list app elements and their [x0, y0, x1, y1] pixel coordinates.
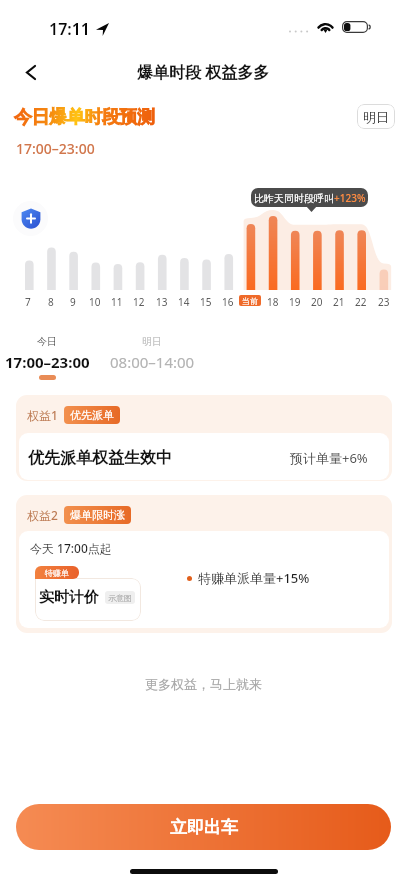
button[interactable]: 明日 — [92, 335, 212, 372]
staticText: 14 — [178, 295, 190, 309]
staticText: 11 — [111, 295, 123, 309]
staticText: 优先派单 — [70, 408, 114, 422]
staticText: 18 — [267, 295, 279, 309]
button[interactable]: 立即出车 — [16, 804, 391, 850]
staticText: 9 — [70, 295, 76, 309]
staticText: 今日 — [37, 335, 57, 348]
staticText: 比昨天同时段呼叫 — [254, 192, 334, 205]
staticText: 爆单限时涨 — [70, 508, 125, 522]
staticText: 权益2 — [27, 507, 58, 523]
staticText: 立即出车 — [170, 817, 238, 838]
staticText: 22 — [355, 295, 367, 309]
staticText: 10 — [89, 295, 101, 309]
staticText: 16 — [222, 295, 234, 309]
staticText: 8 — [48, 295, 54, 309]
staticText: 21 — [333, 295, 345, 309]
staticText: 权益1 — [27, 407, 58, 423]
staticText: 更多权益，马上就来 — [0, 676, 407, 692]
button[interactable]: Back — [13, 48, 49, 96]
staticText: 今天 17:00点起 — [30, 540, 112, 556]
staticText: 明日 — [142, 335, 162, 348]
button[interactable]: 权益1 — [16, 395, 392, 481]
staticText: +123% — [334, 191, 366, 205]
staticText: 明日 — [363, 109, 389, 125]
staticText: 12 — [133, 295, 145, 309]
staticText: 优先派单权益生效中 — [28, 448, 172, 468]
staticText: 实时计价 — [39, 588, 99, 607]
staticText: 15 — [200, 295, 212, 309]
staticText: 17:11 — [49, 18, 91, 40]
button[interactable]: 权益2 — [16, 495, 392, 633]
staticText: 17:00–23:00 — [16, 139, 95, 158]
staticText: 今日爆单时段预测 — [14, 106, 155, 129]
staticText: 当前 — [242, 296, 258, 306]
button[interactable]: 明日 — [357, 104, 395, 129]
staticText: 20 — [311, 295, 323, 309]
button[interactable]: 今日 — [0, 335, 107, 380]
staticText: 示意图 — [108, 593, 132, 603]
staticText: 17:00–23:00 — [5, 352, 90, 372]
staticText: 13 — [156, 295, 168, 309]
staticText: 爆单时段 权益多多 — [137, 61, 270, 83]
staticText: 08:00–14:00 — [110, 352, 195, 372]
staticText: 23 — [378, 295, 390, 309]
staticText: 7 — [25, 295, 31, 309]
staticText: 特赚单 — [45, 568, 69, 578]
staticText: 预计单量+6% — [290, 449, 368, 467]
staticText: 特赚单派单量+15% — [198, 569, 310, 587]
staticText: 19 — [289, 295, 301, 309]
